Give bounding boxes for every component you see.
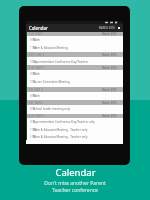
staticText: Math: [33, 94, 41, 98]
staticText: March 2016: [102, 53, 117, 57]
button[interactable]: 7:00: [26, 79, 123, 85]
staticText: 11:00: [30, 128, 37, 132]
staticText: March 2016: [102, 114, 117, 118]
staticText: Mom & Educator Meeting: [33, 46, 68, 50]
staticText: School leader meeting only: [33, 107, 70, 111]
staticText: Soccer Committee Meeting: [33, 80, 70, 84]
button[interactable]: 9:30: [26, 119, 123, 125]
button[interactable]: Calendar: [26, 24, 123, 32]
button[interactable]: 10:30: [26, 59, 123, 65]
staticText: 10:30: [30, 60, 37, 64]
staticText: MARCH 2016: [99, 26, 115, 30]
staticText: 9:00: [30, 107, 36, 111]
staticText: SAT, MAR 5: [29, 101, 43, 105]
staticText: THU, MAR 3: [29, 66, 44, 70]
staticText: Math: [33, 72, 41, 76]
staticText: Mom & Educator Meeting - Teacher only: [33, 128, 88, 132]
staticText: March 2016: [102, 88, 117, 92]
button[interactable]: 9:00: [26, 37, 123, 43]
button[interactable]: FRI, MAR 4: [29, 87, 117, 92]
staticText: WED, MAR 2: [29, 53, 45, 57]
staticText: SUN, MAR 6: [29, 114, 44, 118]
button[interactable]: 9:00: [26, 93, 123, 99]
staticText: 11:00: [30, 46, 37, 50]
staticText: 9:00: [30, 72, 36, 76]
staticText: 9:00: [30, 94, 36, 98]
button[interactable]: SUN, MAR 6: [29, 114, 117, 118]
staticText: Calendar: [29, 25, 48, 31]
staticText: 9:30: [30, 120, 36, 124]
button[interactable]: WED, MAR 2: [29, 52, 117, 57]
staticText: Mom & Educator Meeting - Teacher only: [33, 135, 88, 139]
staticText: Superintendent Conference Day/Teacher on…: [33, 120, 95, 124]
staticText: 7:00: [30, 80, 36, 84]
button[interactable]: THU, MAR 3: [29, 65, 117, 70]
button[interactable]: 9:00: [26, 106, 123, 112]
button[interactable]: TUE, MAR 1: [29, 32, 117, 36]
staticText: FRI, MAR 4: [29, 88, 43, 92]
staticText: March 2016: [102, 101, 117, 105]
staticText: Calendar: [55, 166, 96, 179]
button[interactable]: 1:00: [26, 134, 123, 140]
button[interactable]: 11:00: [26, 127, 123, 133]
staticText: 1:00: [30, 135, 36, 139]
staticText: Math: [33, 38, 41, 42]
button[interactable]: SAT, MAR 5: [29, 100, 117, 105]
button[interactable]: 11:00: [26, 45, 123, 51]
staticText: Don't miss another Parent Teacher confer…: [44, 180, 106, 194]
staticText: TUE, MAR 1: [29, 32, 44, 36]
staticText: 9:00: [30, 38, 36, 42]
staticText: March 2016: [102, 32, 117, 36]
staticText: Superintendent Conference Day/Teacher: [33, 60, 89, 64]
button[interactable]: 9:00: [26, 71, 123, 77]
staticText: March 2016: [102, 66, 117, 70]
